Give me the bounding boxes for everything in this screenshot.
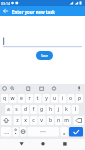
button[interactable]: u xyxy=(51,95,58,102)
button[interactable]: d xyxy=(22,106,29,113)
button[interactable] xyxy=(74,116,85,125)
button[interactable]: j xyxy=(55,106,62,113)
button[interactable]: e xyxy=(18,95,25,102)
button[interactable]: t xyxy=(34,95,41,102)
button[interactable]: m xyxy=(63,117,70,124)
button[interactable] xyxy=(1,116,12,125)
staticText: ?123 xyxy=(2,131,11,134)
button[interactable]: n xyxy=(55,117,62,124)
button[interactable]: w xyxy=(9,95,16,102)
button[interactable] xyxy=(3,30,82,47)
button[interactable]: l xyxy=(72,106,79,113)
button[interactable]: a xyxy=(5,106,12,113)
button[interactable]: y xyxy=(43,95,50,102)
button[interactable]: x xyxy=(22,117,29,124)
button[interactable]: Save xyxy=(36,51,53,60)
button[interactable] xyxy=(60,140,69,149)
button[interactable] xyxy=(0,6,10,16)
button[interactable]: c xyxy=(30,117,37,124)
button[interactable] xyxy=(1,127,12,137)
staticText: Save xyxy=(41,54,48,58)
button[interactable] xyxy=(13,127,19,137)
button[interactable]: o xyxy=(67,95,74,102)
button[interactable]: z xyxy=(14,117,21,124)
staticText: 03:14 xyxy=(1,1,10,6)
staticText: Enter your new task xyxy=(12,9,55,15)
button[interactable] xyxy=(17,140,26,149)
button[interactable]: p xyxy=(76,95,83,102)
button[interactable] xyxy=(39,140,48,149)
button[interactable]: b xyxy=(47,117,54,124)
button[interactable]: i xyxy=(59,95,66,102)
button[interactable]: r xyxy=(26,95,33,102)
button[interactable] xyxy=(69,127,83,137)
button[interactable] xyxy=(20,127,27,137)
button[interactable] xyxy=(61,127,68,137)
button[interactable]: s xyxy=(13,106,20,113)
button[interactable]: h xyxy=(47,106,54,113)
button[interactable]: g xyxy=(38,106,45,113)
button[interactable]: v xyxy=(38,117,45,124)
button[interactable]: q xyxy=(1,95,8,102)
button[interactable] xyxy=(28,127,60,137)
button[interactable]: f xyxy=(30,106,37,113)
button[interactable]: k xyxy=(63,106,70,113)
